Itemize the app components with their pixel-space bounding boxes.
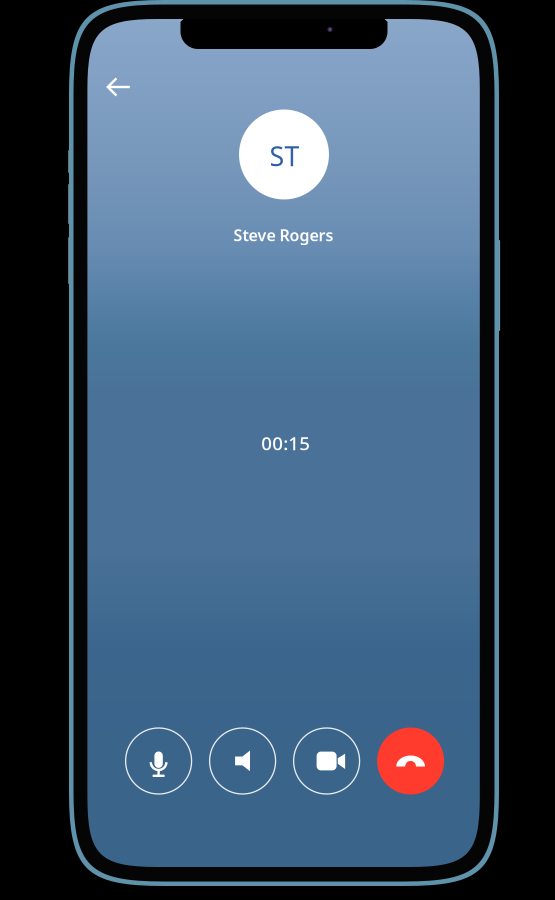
staticText: 00:15 [261, 431, 310, 455]
button[interactable]: Speaker [209, 727, 276, 794]
button[interactable]: Video [293, 727, 360, 794]
button[interactable]: Back [95, 63, 143, 111]
button[interactable]: End call [377, 727, 444, 794]
button[interactable]: Mute [125, 727, 192, 794]
staticText: ST [269, 138, 299, 174]
staticText: Steve Rogers [234, 224, 334, 246]
